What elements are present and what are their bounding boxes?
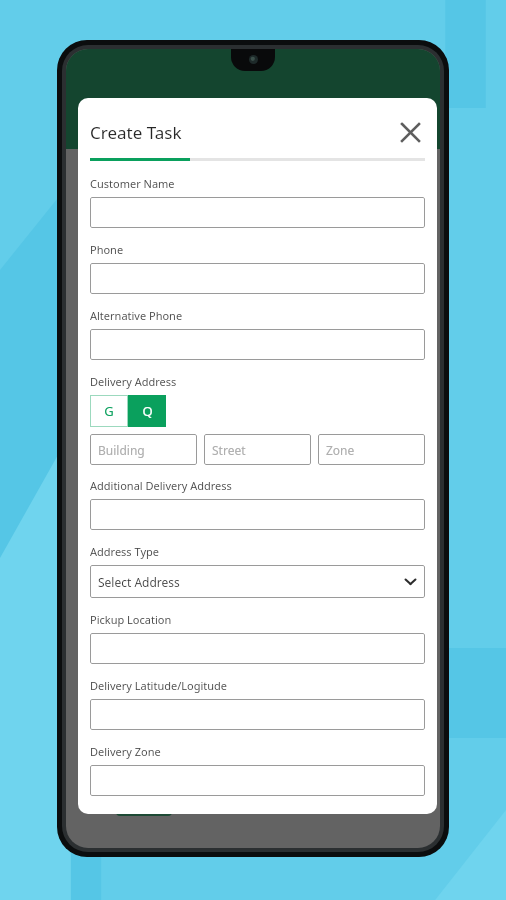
button[interactable] [90,699,425,730]
staticText: Q [142,402,153,420]
button[interactable] [90,263,425,294]
button[interactable]: Q [128,395,166,427]
button[interactable] [90,765,425,796]
button[interactable]: Close [393,115,427,149]
staticText: Delivery Latitude/Logitude [90,678,228,693]
button[interactable]: Select Address [90,565,425,598]
staticText: G [104,402,114,420]
staticText: Address Type [90,544,159,559]
staticText: Delivery Address [90,374,177,389]
staticText: Additional Delivery Address [90,478,232,493]
staticText: Street [212,442,246,458]
button[interactable] [90,329,425,360]
button[interactable] [90,197,425,228]
button[interactable]: G [90,395,128,427]
staticText: Alternative Phone [90,308,183,323]
staticText: Select Address [98,574,180,590]
button[interactable] [90,633,425,664]
staticText: Pickup Location [90,612,172,627]
staticText: Phone [90,242,124,257]
button[interactable]: Zone [318,434,425,465]
staticText: Zone [326,442,355,458]
button[interactable] [90,499,425,530]
button[interactable]: Street [204,434,311,465]
staticText: Customer Name [90,176,175,191]
staticText: Building [98,442,145,458]
staticText: Delivery Zone [90,744,161,759]
staticText: Create Task [90,121,393,144]
button[interactable]: Building [90,434,197,465]
